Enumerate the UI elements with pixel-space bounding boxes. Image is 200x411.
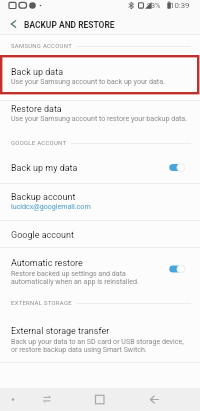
staticText: EXTERNAL STORAGE (11, 300, 72, 307)
staticText: 93% (147, 1, 161, 9)
staticText: Google account (11, 230, 74, 241)
staticText: automatically when an app is reinstalled… (11, 277, 139, 285)
staticText: SAMSUNG ACCOUNT (11, 43, 72, 50)
button[interactable]: Recent apps (81, 388, 119, 411)
staticText: Automatic restore (11, 258, 83, 269)
button[interactable]: Navigate up (0, 12, 26, 34)
button[interactable] (0, 101, 200, 137)
staticText: Back up data (11, 67, 64, 78)
staticText: Restore backed up settings and data (11, 269, 126, 277)
staticText: Back up my data (11, 163, 78, 174)
staticText: Use your Samsung account to back up your… (11, 77, 165, 85)
button[interactable] (0, 248, 200, 290)
staticText: Use your Samsung account to restore your… (11, 114, 188, 122)
staticText: Back up your data to an SD card or USB s… (11, 337, 184, 345)
button[interactable] (0, 152, 200, 183)
staticText: Backup account (11, 192, 76, 203)
button[interactable] (0, 221, 200, 247)
staticText: lucidcx@googlemail.com (11, 202, 91, 210)
staticText: External storage transfer (11, 326, 110, 337)
staticText: GOOGLE ACCOUNT (11, 140, 67, 147)
staticText: 10:39 (170, 1, 190, 10)
staticText: BACKUP AND RESTORE (24, 20, 115, 30)
button[interactable] (0, 314, 200, 362)
button[interactable] (0, 56, 200, 100)
staticText: or restore backup data using Smart Switc… (11, 345, 147, 353)
staticText: Restore data (11, 104, 62, 115)
button[interactable] (0, 184, 200, 220)
button[interactable]: Switch apps (29, 388, 65, 411)
button[interactable]: Back (136, 388, 174, 411)
